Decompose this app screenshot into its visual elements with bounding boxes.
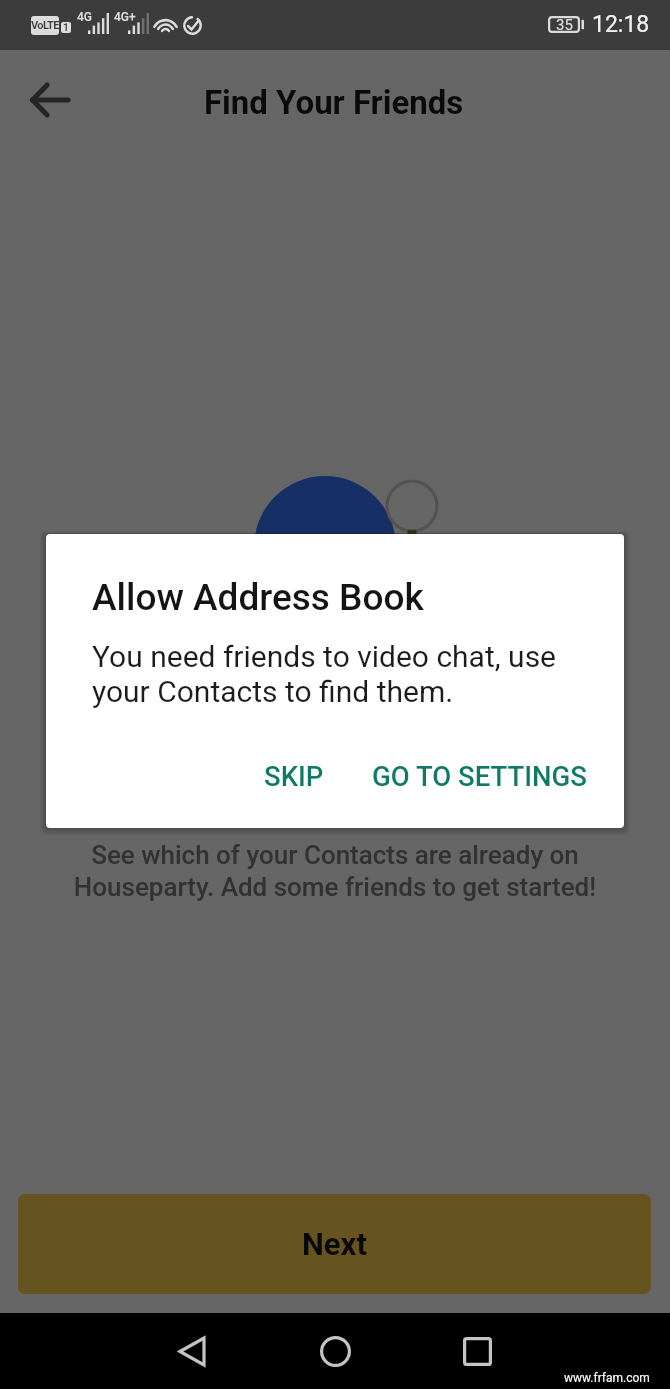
button[interactable]: GO TO SETTINGS — [355, 748, 604, 804]
staticText: 35 — [556, 16, 573, 33]
staticText: You need friends to video chat, use your… — [92, 639, 557, 709]
button[interactable]: Recent apps — [447, 1321, 507, 1381]
button[interactable]: Next — [18, 1194, 651, 1294]
staticText: Allow Address Book — [92, 576, 424, 619]
button[interactable]: Back — [12, 62, 88, 138]
staticText: 4G — [77, 10, 92, 24]
staticText: 1 — [63, 22, 69, 33]
staticText: GO TO SETTINGS — [372, 760, 587, 792]
staticText: www.frfam.com — [564, 1371, 650, 1385]
staticText: 4G+ — [114, 10, 136, 24]
staticText: 12:18 — [592, 11, 650, 38]
staticText: See which of your Contacts are already o… — [20, 840, 650, 902]
staticText: SKIP — [264, 760, 324, 792]
button[interactable]: Home — [305, 1321, 365, 1381]
button[interactable]: Back — [162, 1321, 222, 1381]
button[interactable]: SKIP — [246, 748, 342, 804]
staticText: Next — [302, 1226, 367, 1262]
staticText: Find Your Friends — [204, 83, 464, 122]
staticText: VoLTE — [31, 19, 59, 32]
